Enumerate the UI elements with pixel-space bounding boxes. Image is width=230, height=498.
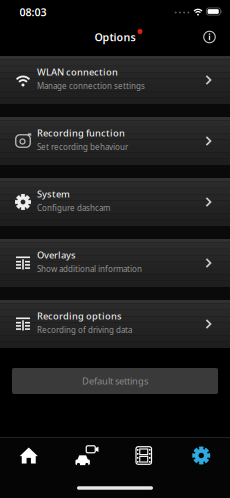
staticText: System	[37, 188, 70, 200]
button[interactable]: Home	[0, 435, 57, 475]
staticText: Options	[94, 30, 135, 44]
staticText: Recording function	[37, 127, 125, 139]
staticText: Set recording behaviour	[37, 142, 128, 152]
staticText: Show additional information	[37, 264, 142, 274]
button[interactable]: System	[0, 178, 230, 226]
button[interactable]: Recording function	[0, 117, 230, 165]
button[interactable]: Info	[196, 24, 222, 50]
staticText: Manage connection settings	[37, 81, 145, 91]
button[interactable]: Options	[172, 435, 230, 475]
staticText: 08:03	[19, 5, 46, 19]
button[interactable]: Overlays	[0, 239, 230, 287]
staticText: Recording options	[37, 310, 122, 322]
button[interactable]: Recordings	[115, 435, 172, 475]
staticText: Recording of driving data	[37, 325, 132, 335]
staticText: Default settings	[82, 375, 148, 387]
button[interactable]: WLAN connection	[0, 56, 230, 104]
button[interactable]: Default settings	[12, 368, 218, 394]
staticText: Overlays	[37, 249, 76, 261]
staticText: WLAN connection	[37, 66, 118, 78]
button[interactable]: Recording options	[0, 300, 230, 348]
button[interactable]: Dashcam	[57, 435, 115, 475]
staticText: Configure dashcam	[37, 203, 110, 213]
